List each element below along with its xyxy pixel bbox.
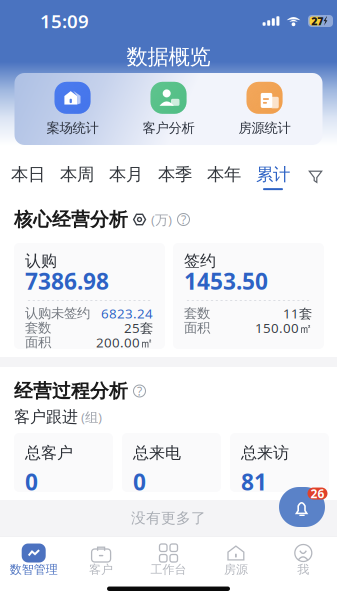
button[interactable]: 工作台	[135, 536, 202, 577]
staticText: 0	[25, 467, 38, 497]
staticText: 数据概览	[126, 44, 210, 70]
staticText: 房源	[224, 562, 248, 577]
button[interactable]: 通知	[279, 487, 328, 527]
button[interactable]: 我	[270, 536, 337, 577]
staticText: 签约	[184, 251, 216, 271]
staticText: (组)	[81, 408, 102, 426]
staticText: 本月	[109, 164, 143, 185]
staticText: (万)	[151, 211, 172, 228]
button[interactable]: 筛选	[297, 159, 333, 195]
staticText: 本日	[11, 164, 45, 185]
staticText: 客户跟进	[14, 407, 78, 427]
button[interactable]: 本日	[3, 159, 52, 195]
staticText: 本季	[158, 164, 192, 185]
button[interactable]: 房源统计	[216, 82, 312, 136]
staticText: 我	[297, 562, 309, 577]
staticText: 核心经营分析	[14, 208, 128, 231]
staticText: 房源统计	[238, 120, 290, 136]
button[interactable]: 本月	[101, 159, 150, 195]
staticText: 面积	[184, 320, 210, 336]
staticText: 经营过程分析	[14, 379, 128, 402]
button[interactable]: 客户分析	[120, 82, 216, 136]
button[interactable]: 案场统计	[24, 82, 120, 136]
staticText: 本周	[60, 164, 94, 185]
button[interactable]: 客户	[67, 536, 135, 577]
staticText: 6823.24	[101, 304, 153, 322]
staticText: 7386.98	[25, 266, 109, 296]
staticText: 150.00㎡	[255, 319, 312, 337]
staticText: 27	[311, 14, 323, 28]
staticText: 11套	[283, 304, 312, 322]
staticText: 认购未签约	[25, 305, 90, 321]
staticText: 15:09	[40, 9, 89, 33]
staticText: 客户	[89, 562, 113, 577]
staticText: 面积	[25, 334, 51, 350]
button[interactable]: 本年	[199, 159, 248, 195]
staticText: 200.00㎡	[96, 333, 153, 351]
staticText: 26	[310, 485, 324, 501]
button[interactable]: 房源	[202, 536, 270, 577]
staticText: 1453.50	[184, 266, 268, 296]
staticText: ?	[137, 383, 142, 399]
staticText: 数智管理	[10, 562, 58, 577]
staticText: 套数	[25, 320, 51, 336]
staticText: 客户分析	[142, 120, 194, 136]
staticText: 套数	[184, 305, 210, 321]
button[interactable]: 数智管理	[0, 536, 67, 577]
button[interactable]: 累计	[248, 159, 297, 195]
staticText: 案场统计	[46, 120, 98, 136]
staticText: 81	[241, 467, 267, 497]
staticText: ?	[181, 211, 186, 227]
button[interactable]: 本周	[52, 159, 101, 195]
button[interactable]: 本季	[150, 159, 199, 195]
staticText: 累计	[256, 164, 290, 185]
staticText: 总来电	[133, 443, 181, 463]
staticText: 工作台	[150, 562, 186, 577]
staticText: 认购	[25, 251, 57, 271]
staticText: 本年	[207, 164, 241, 185]
staticText: 25套	[124, 319, 153, 337]
staticText: 0	[133, 467, 146, 497]
staticText: 没有更多了	[131, 509, 206, 527]
staticText: 总客户	[25, 443, 73, 463]
staticText: 总来访	[241, 443, 289, 463]
